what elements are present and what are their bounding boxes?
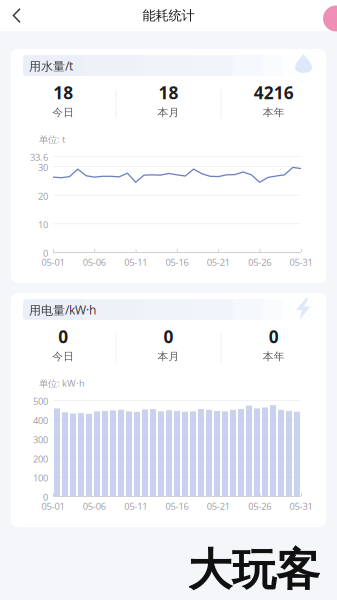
- staticText: 05-31: [289, 256, 312, 268]
- staticText: 用水量/t: [29, 58, 73, 74]
- staticText: 05-21: [207, 500, 230, 512]
- staticText: 200: [33, 453, 48, 465]
- staticText: 18: [158, 81, 178, 104]
- staticText: 0: [58, 325, 68, 348]
- staticText: 20: [38, 190, 48, 202]
- staticText: 05-26: [248, 500, 271, 512]
- staticText: 本年: [263, 106, 285, 119]
- button[interactable]: Back: [0, 0, 34, 31]
- staticText: 用电量/kW·h: [29, 302, 96, 318]
- staticText: 300: [33, 433, 48, 446]
- staticText: 30: [38, 161, 48, 174]
- staticText: 本月: [157, 106, 179, 119]
- staticText: 本月: [157, 350, 179, 363]
- staticText: 05-16: [165, 256, 188, 268]
- staticText: 单位: t: [39, 133, 65, 145]
- staticText: 05-21: [207, 256, 230, 268]
- staticText: 05-06: [83, 256, 106, 268]
- staticText: 今日: [52, 350, 74, 363]
- staticText: 05-16: [165, 500, 188, 512]
- staticText: 单位: kW·h: [39, 377, 85, 389]
- staticText: 本年: [263, 350, 285, 363]
- staticText: 05-06: [83, 500, 106, 512]
- staticText: 0: [269, 325, 279, 348]
- staticText: 0: [163, 325, 173, 348]
- staticText: 18: [53, 81, 73, 104]
- button[interactable]: Profile: [311, 2, 337, 28]
- staticText: 05-26: [248, 256, 271, 268]
- staticText: 400: [33, 414, 48, 427]
- staticText: 05-31: [289, 500, 312, 512]
- staticText: 今日: [52, 106, 74, 119]
- staticText: 05-11: [124, 256, 147, 268]
- staticText: 100: [33, 472, 48, 484]
- staticText: 05-01: [41, 500, 64, 512]
- staticText: 05-01: [41, 256, 64, 268]
- staticText: 500: [33, 395, 48, 407]
- staticText: 10: [38, 218, 48, 231]
- staticText: 能耗统计: [142, 7, 194, 24]
- staticText: 大玩客: [188, 543, 320, 597]
- staticText: 4216: [254, 81, 294, 104]
- staticText: 0: [43, 491, 48, 503]
- staticText: 0: [43, 247, 48, 259]
- staticText: 05-11: [124, 500, 147, 512]
- staticText: 33.6: [30, 151, 48, 163]
